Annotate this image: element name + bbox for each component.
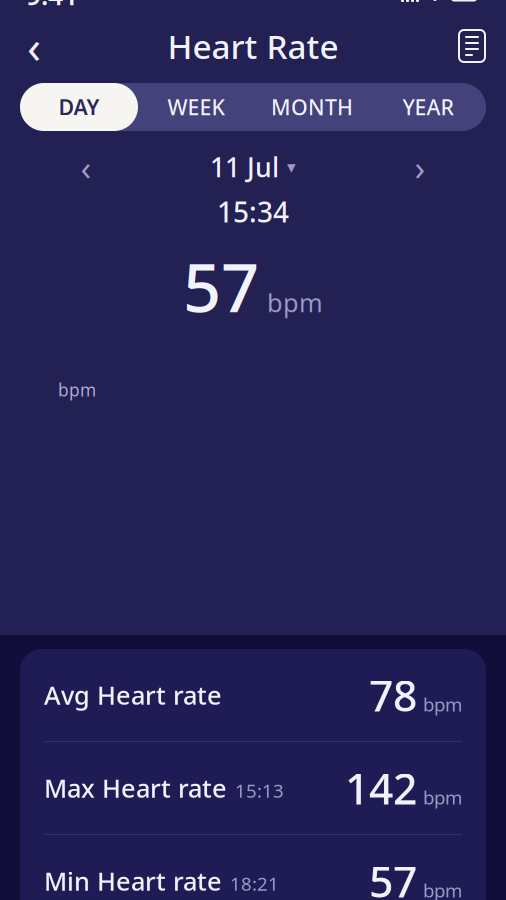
staticText: ‹ [27, 16, 41, 76]
staticText: Max Heart rate [44, 771, 227, 805]
staticText: DAY [58, 93, 99, 121]
staticText: Heart Rate [167, 24, 338, 68]
button[interactable]: Max Heart rate [20, 742, 486, 834]
button[interactable]: Avg Heart rate [20, 649, 486, 741]
staticText: 142 [345, 760, 417, 816]
staticText: 57 [183, 242, 259, 331]
staticText: 57 [369, 853, 417, 900]
button[interactable]: DAY [20, 83, 138, 131]
staticText: WEEK [167, 93, 224, 121]
button[interactable]: Back [12, 24, 56, 68]
button[interactable]: YEAR [370, 83, 486, 131]
button[interactable]: Min Heart rate [20, 835, 486, 900]
staticText: bpm [423, 692, 462, 717]
staticText: MONTH [271, 93, 353, 121]
button[interactable]: Notes [450, 24, 494, 68]
staticText: 15:13 [235, 778, 284, 803]
staticText: ▾ [287, 157, 296, 177]
button[interactable]: WEEK [138, 83, 254, 131]
staticText: YEAR [402, 93, 453, 121]
staticText: › [414, 144, 425, 190]
button[interactable]: Previous day [64, 147, 108, 187]
staticText: 11 Jul [210, 149, 279, 185]
button[interactable]: Next day [398, 147, 442, 187]
staticText: 160 [55, 813, 88, 838]
staticText: 200 [55, 759, 88, 784]
staticText: bpm [423, 785, 462, 810]
staticText: bpm [267, 286, 323, 319]
staticText: Avg Heart rate [44, 678, 222, 712]
staticText: bpm [58, 378, 96, 401]
staticText: 78 [369, 667, 417, 723]
staticText: 15:34 [217, 193, 289, 230]
staticText: Min Heart rate [44, 864, 222, 898]
button[interactable]: MONTH [254, 83, 370, 131]
staticText: 18:21 [230, 871, 279, 896]
staticText: 120 [55, 867, 88, 891]
staticText: ‹ [80, 144, 91, 190]
staticText: 9:41 [26, 0, 78, 13]
staticText: bpm [423, 878, 462, 900]
